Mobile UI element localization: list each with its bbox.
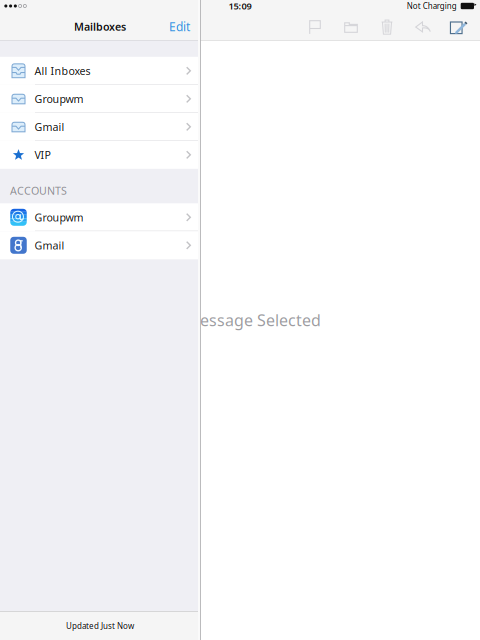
staticText: Gmail [34, 238, 64, 252]
staticText: No Message Selected [159, 309, 321, 331]
button[interactable]: Groupwm [0, 203, 200, 231]
staticText: All Inboxes [34, 64, 90, 78]
staticText: Not Charging [407, 1, 457, 11]
staticText: 15:09 [228, 0, 251, 12]
staticText: Mailboxes [74, 19, 126, 34]
button[interactable]: VIP [0, 141, 200, 169]
staticText: Updated Just Now [66, 621, 134, 631]
button[interactable]: All Inboxes [0, 57, 200, 85]
button[interactable]: Gmail [0, 231, 200, 259]
staticText: ACCOUNTS [10, 184, 67, 198]
button[interactable]: Delete [369, 13, 405, 41]
staticText: VIP [34, 148, 50, 162]
button[interactable]: Flag [297, 13, 333, 41]
button[interactable]: Gmail [0, 113, 200, 141]
button[interactable]: Move to folder [333, 13, 369, 41]
button[interactable]: Groupwm [0, 85, 200, 113]
button[interactable]: Compose [441, 13, 477, 41]
staticText: Gmail [34, 120, 64, 134]
staticText: Groupwm [34, 210, 83, 224]
staticText: Edit [169, 18, 190, 34]
button[interactable]: Edit [159, 11, 200, 41]
staticText: Groupwm [34, 92, 83, 106]
button[interactable]: Reply [405, 13, 441, 41]
